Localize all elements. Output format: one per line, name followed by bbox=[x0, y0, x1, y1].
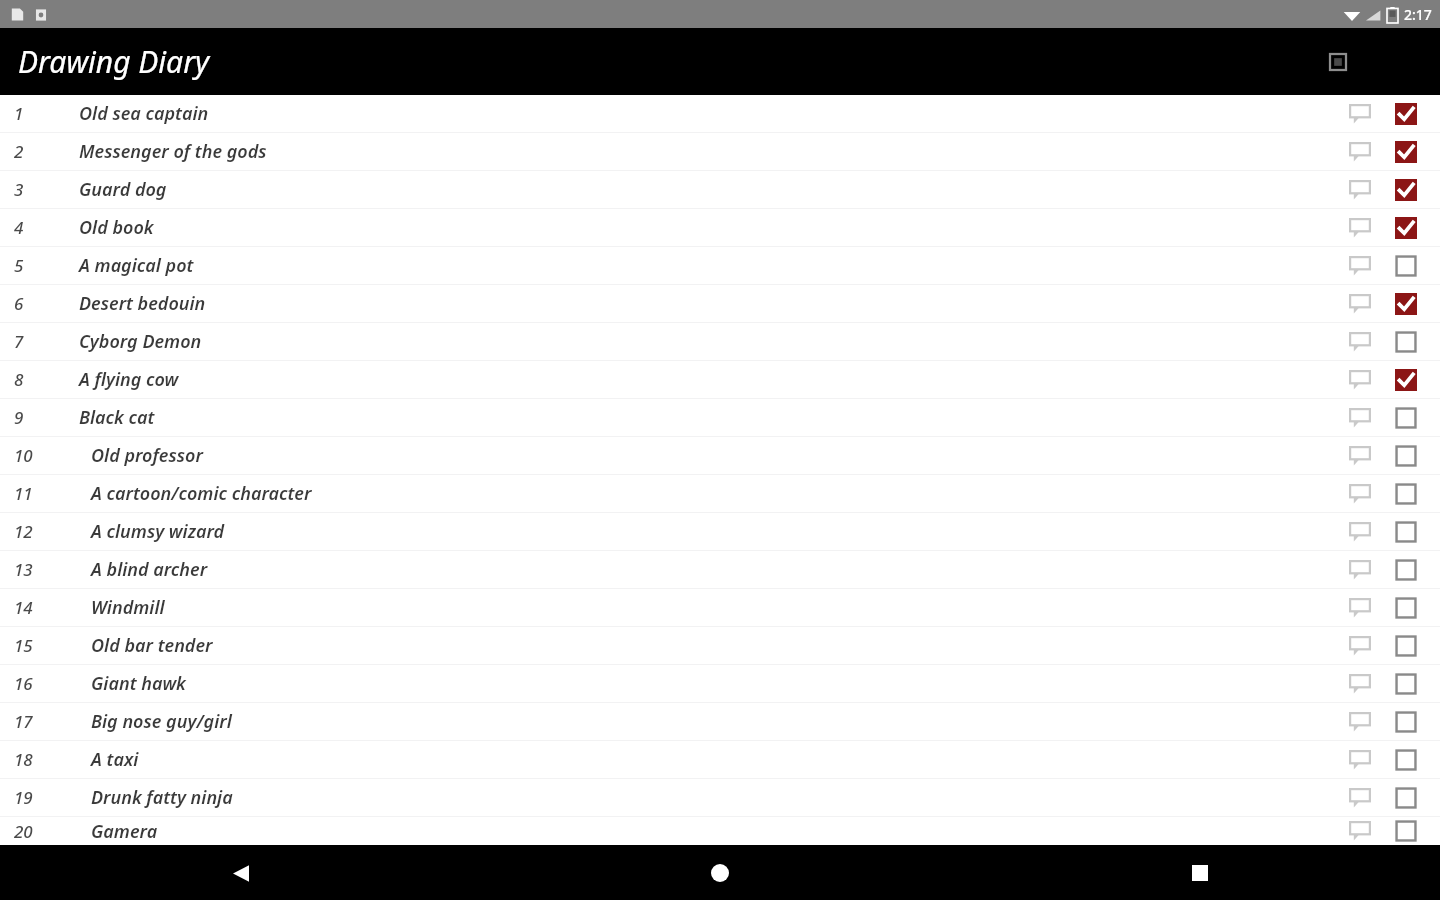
staticText: Guard dog bbox=[79, 177, 167, 202]
button[interactable]: 17 bbox=[0, 703, 1440, 740]
button[interactable]: 1 bbox=[0, 95, 1440, 132]
staticText: 17 bbox=[14, 710, 48, 733]
button[interactable]: Not done bbox=[1388, 590, 1424, 626]
staticText: 14 bbox=[14, 596, 48, 619]
staticText: A taxi bbox=[91, 747, 139, 772]
button[interactable]: 10 bbox=[0, 437, 1440, 474]
staticText: 13 bbox=[14, 558, 48, 581]
button[interactable]: 5 bbox=[0, 247, 1440, 284]
button[interactable]: 3 bbox=[0, 171, 1440, 208]
button[interactable]: Not done bbox=[1388, 324, 1424, 360]
button[interactable]: Done bbox=[1388, 362, 1424, 398]
staticText: A magical pot bbox=[79, 253, 194, 278]
button[interactable]: Note bbox=[1342, 476, 1378, 512]
button[interactable]: Note bbox=[1342, 96, 1378, 132]
button[interactable]: Not done bbox=[1388, 400, 1424, 436]
button[interactable]: Recents bbox=[1176, 849, 1224, 897]
button[interactable]: Note bbox=[1342, 552, 1378, 588]
button[interactable]: Not done bbox=[1388, 438, 1424, 474]
button[interactable]: Done bbox=[1388, 210, 1424, 246]
button[interactable]: 7 bbox=[0, 323, 1440, 360]
button[interactable]: Note bbox=[1342, 704, 1378, 740]
button[interactable]: 16 bbox=[0, 665, 1440, 702]
button[interactable]: Not done bbox=[1388, 780, 1424, 816]
button[interactable]: Not done bbox=[1388, 628, 1424, 664]
button[interactable]: 13 bbox=[0, 551, 1440, 588]
staticText: 2:17 bbox=[1404, 5, 1432, 24]
button[interactable]: 18 bbox=[0, 741, 1440, 778]
button[interactable]: 4 bbox=[0, 209, 1440, 246]
staticText: 4 bbox=[14, 216, 48, 239]
button[interactable]: Note bbox=[1342, 172, 1378, 208]
button[interactable]: Not done bbox=[1388, 248, 1424, 284]
button[interactable]: Overflow bbox=[1318, 42, 1358, 82]
button[interactable]: Not done bbox=[1388, 476, 1424, 512]
staticText: Drunk fatty ninja bbox=[91, 785, 233, 810]
button[interactable]: 11 bbox=[0, 475, 1440, 512]
staticText: 20 bbox=[14, 820, 48, 843]
button[interactable]: Home bbox=[696, 849, 744, 897]
button[interactable]: Not done bbox=[1388, 704, 1424, 740]
button[interactable]: Not done bbox=[1388, 666, 1424, 702]
staticText: 8 bbox=[14, 368, 48, 391]
staticText: Windmill bbox=[91, 595, 165, 620]
button[interactable]: 14 bbox=[0, 589, 1440, 626]
button[interactable]: Note bbox=[1342, 628, 1378, 664]
button[interactable]: Not done bbox=[1388, 552, 1424, 588]
button[interactable]: 19 bbox=[0, 779, 1440, 816]
staticText: Old bar tender bbox=[91, 633, 213, 658]
button[interactable]: Not done bbox=[1388, 742, 1424, 778]
button[interactable]: Not done bbox=[1388, 514, 1424, 550]
staticText: A cartoon/comic character bbox=[91, 481, 312, 506]
button[interactable]: 9 bbox=[0, 399, 1440, 436]
staticText: 16 bbox=[14, 672, 48, 695]
button[interactable]: 2 bbox=[0, 133, 1440, 170]
button[interactable]: Note bbox=[1342, 248, 1378, 284]
staticText: 1 bbox=[14, 102, 48, 125]
staticText: Giant hawk bbox=[91, 671, 186, 696]
staticText: 6 bbox=[14, 292, 48, 315]
button[interactable]: Done bbox=[1388, 286, 1424, 322]
button[interactable]: Note bbox=[1342, 400, 1378, 436]
button[interactable]: Note bbox=[1342, 780, 1378, 816]
staticText: Desert bedouin bbox=[79, 291, 206, 316]
button[interactable]: Note bbox=[1342, 210, 1378, 246]
button[interactable]: Back bbox=[216, 849, 264, 897]
button[interactable]: Not done bbox=[1388, 817, 1424, 845]
button[interactable]: Note bbox=[1342, 438, 1378, 474]
staticText: Gamera bbox=[91, 819, 158, 844]
button[interactable]: Note bbox=[1342, 134, 1378, 170]
staticText: 7 bbox=[14, 330, 48, 353]
button[interactable]: Note bbox=[1342, 590, 1378, 626]
staticText: 5 bbox=[14, 254, 48, 277]
staticText: 18 bbox=[14, 748, 48, 771]
button[interactable]: 6 bbox=[0, 285, 1440, 322]
button[interactable]: Note bbox=[1342, 362, 1378, 398]
button[interactable]: Done bbox=[1388, 134, 1424, 170]
staticText: 11 bbox=[14, 482, 48, 505]
button[interactable]: Note bbox=[1342, 666, 1378, 702]
button[interactable]: Note bbox=[1342, 514, 1378, 550]
button[interactable]: Done bbox=[1388, 96, 1424, 132]
button[interactable]: Note bbox=[1342, 742, 1378, 778]
button[interactable]: 8 bbox=[0, 361, 1440, 398]
button[interactable]: 12 bbox=[0, 513, 1440, 550]
staticText: Messenger of the gods bbox=[79, 139, 267, 164]
staticText: A blind archer bbox=[91, 557, 208, 582]
button[interactable]: Note bbox=[1342, 324, 1378, 360]
staticText: Old professor bbox=[91, 443, 203, 468]
staticText: A clumsy wizard bbox=[91, 519, 225, 544]
button[interactable]: Note bbox=[1342, 286, 1378, 322]
staticText: Old book bbox=[79, 215, 154, 240]
staticText: 10 bbox=[14, 444, 48, 467]
staticText: 2 bbox=[14, 140, 48, 163]
staticText: 19 bbox=[14, 786, 48, 809]
button[interactable]: Done bbox=[1388, 172, 1424, 208]
staticText: Drawing Diary bbox=[18, 41, 210, 82]
staticText: 12 bbox=[14, 520, 48, 543]
button[interactable]: 15 bbox=[0, 627, 1440, 664]
button[interactable]: 20 bbox=[0, 817, 1440, 845]
button[interactable]: Note bbox=[1342, 817, 1378, 845]
staticText: Black cat bbox=[79, 405, 155, 430]
staticText: 3 bbox=[14, 178, 48, 201]
